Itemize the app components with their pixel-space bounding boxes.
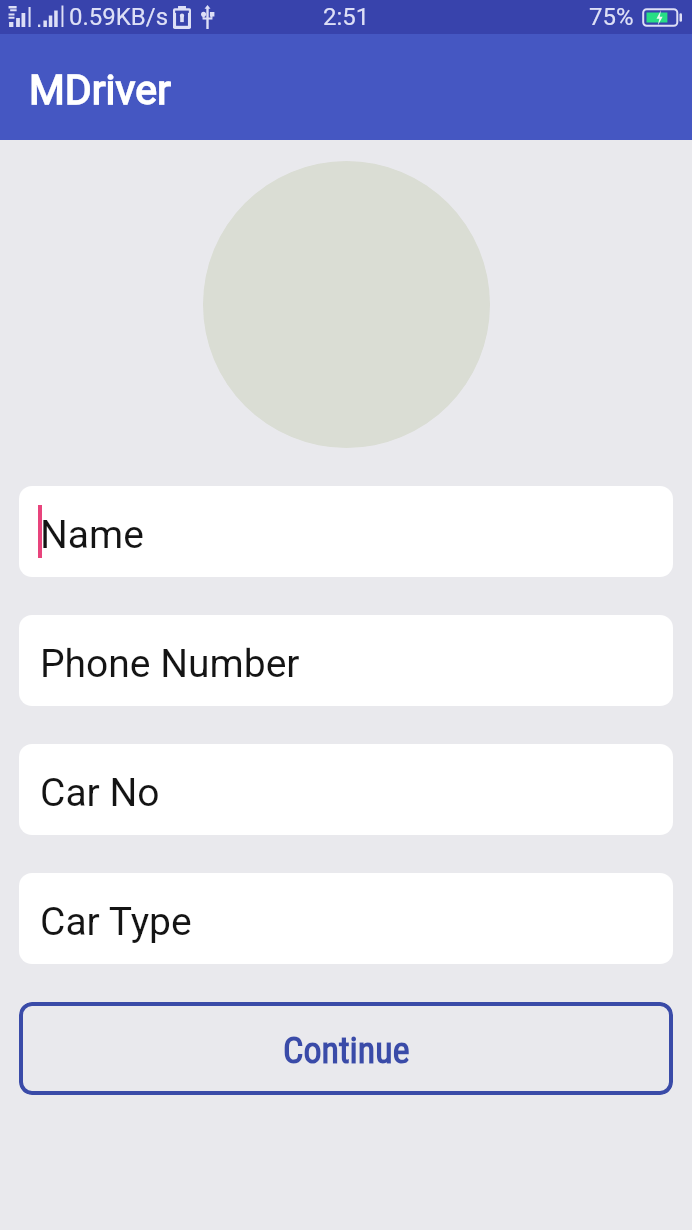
staticText: 0.59KB/s — [69, 3, 169, 31]
staticText: 75% — [589, 3, 634, 31]
staticText: 2:51 — [323, 3, 370, 31]
button[interactable]: Profile photo — [203, 161, 490, 448]
staticText: Car No — [40, 770, 160, 816]
staticText: Name — [40, 512, 144, 558]
staticText: MDriver — [29, 66, 171, 114]
button[interactable]: Phone Number — [19, 615, 673, 706]
button[interactable]: Car Type — [19, 873, 673, 964]
button[interactable]: Car No — [19, 744, 673, 835]
button[interactable]: Continue — [19, 1002, 673, 1095]
staticText: Phone Number — [40, 641, 300, 687]
button[interactable]: Name — [19, 486, 673, 577]
staticText: Continue — [283, 1030, 410, 1072]
staticText: Car Type — [40, 899, 192, 945]
